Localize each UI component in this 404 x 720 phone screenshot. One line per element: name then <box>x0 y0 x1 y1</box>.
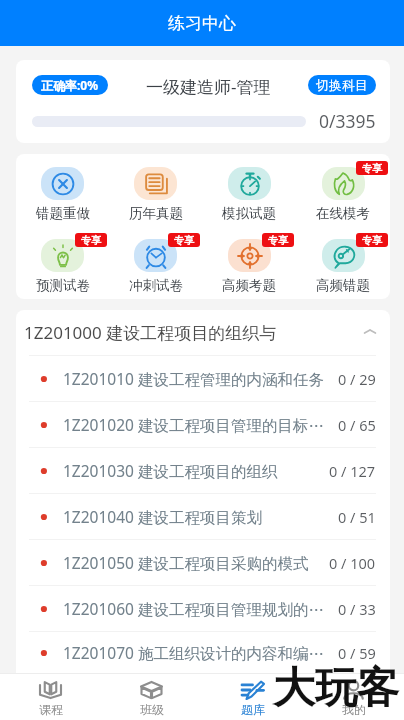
staticText: 在线模考 <box>316 205 370 222</box>
staticText: 专享 <box>174 234 194 247</box>
staticText: 1Z201010 建设工程管理的内涵和任务 <box>63 368 336 389</box>
staticText: 1Z201000 建设工程项目的组织与 <box>24 321 362 344</box>
staticText: 0 / 127 <box>329 461 376 481</box>
button[interactable]: 专享 <box>109 239 202 294</box>
staticText: 0/3395 <box>319 109 376 133</box>
button[interactable]: 题库 <box>202 673 303 720</box>
staticText: 冲刺试卷 <box>129 277 183 294</box>
staticText: 1Z201020 建设工程项目管理的目标和… <box>63 414 336 435</box>
button[interactable]: 1Z201050 建设工程项目采购的模式 <box>16 540 390 585</box>
button[interactable]: 1Z201040 建设工程项目策划 <box>16 494 390 539</box>
staticText: 班级 <box>140 702 164 717</box>
button[interactable]: 切换科目 <box>308 75 376 95</box>
button[interactable]: 1Z201060 建设工程项目管理规划的内… <box>16 586 390 631</box>
staticText: 0 / 100 <box>329 553 376 573</box>
staticText: 专享 <box>362 234 382 247</box>
button[interactable]: 课程 <box>0 673 101 720</box>
other: Collapse section <box>362 325 378 341</box>
staticText: 1Z201030 建设工程项目的组织 <box>63 460 327 481</box>
button[interactable]: 1Z201010 建设工程管理的内涵和任务 <box>16 356 390 401</box>
button[interactable]: 错题重做 <box>16 167 109 222</box>
staticText: 高频考题 <box>222 277 276 294</box>
button[interactable]: 1Z201070 施工组织设计的内容和编制… <box>16 632 390 673</box>
staticText: 0 / 33 <box>338 599 376 619</box>
staticText: 模拟试题 <box>222 205 276 222</box>
staticText: 正确率:0% <box>41 77 99 93</box>
staticText: 1Z201050 建设工程项目采购的模式 <box>63 552 327 573</box>
staticText: 0 / 29 <box>338 369 376 389</box>
button[interactable]: 1Z201030 建设工程项目的组织 <box>16 448 390 493</box>
staticText: 高频错题 <box>316 277 370 294</box>
staticText: 我的 <box>342 702 366 717</box>
staticText: 1Z201040 建设工程项目策划 <box>63 506 336 527</box>
button[interactable]: 专享 <box>296 239 390 294</box>
staticText: 0 / 65 <box>338 415 376 435</box>
staticText: 专享 <box>362 162 382 175</box>
staticText: 预测试卷 <box>36 277 90 294</box>
button[interactable]: 专享 <box>202 239 296 294</box>
button[interactable]: 我的 <box>303 673 404 720</box>
staticText: 切换科目 <box>316 77 368 93</box>
button[interactable]: 班级 <box>101 673 202 720</box>
staticText: 1Z201060 建设工程项目管理规划的内… <box>63 598 336 619</box>
staticText: 题库 <box>241 702 265 717</box>
staticText: 专享 <box>268 234 288 247</box>
staticText: 课程 <box>39 702 63 717</box>
staticText: 错题重做 <box>36 205 90 222</box>
staticText: 1Z201070 施工组织设计的内容和编制… <box>63 642 336 663</box>
button[interactable]: 模拟试题 <box>202 167 296 222</box>
staticText: 一级建造师-管理 <box>146 75 271 95</box>
staticText: 大玩客 <box>273 662 399 715</box>
staticText: 0 / 59 <box>338 643 376 663</box>
staticText: 0 / 51 <box>338 507 376 527</box>
button[interactable]: 专享 <box>16 239 109 294</box>
button[interactable]: 专享 <box>296 167 390 222</box>
button[interactable]: 历年真题 <box>109 167 202 222</box>
staticText: 历年真题 <box>129 205 183 222</box>
button[interactable]: 正确率:0% <box>32 75 108 95</box>
staticText: 专享 <box>81 234 101 247</box>
button[interactable]: 1Z201000 建设工程项目的组织与 <box>16 310 390 355</box>
button[interactable]: 1Z201020 建设工程项目管理的目标和… <box>16 402 390 447</box>
staticText: 练习中心 <box>168 13 236 34</box>
